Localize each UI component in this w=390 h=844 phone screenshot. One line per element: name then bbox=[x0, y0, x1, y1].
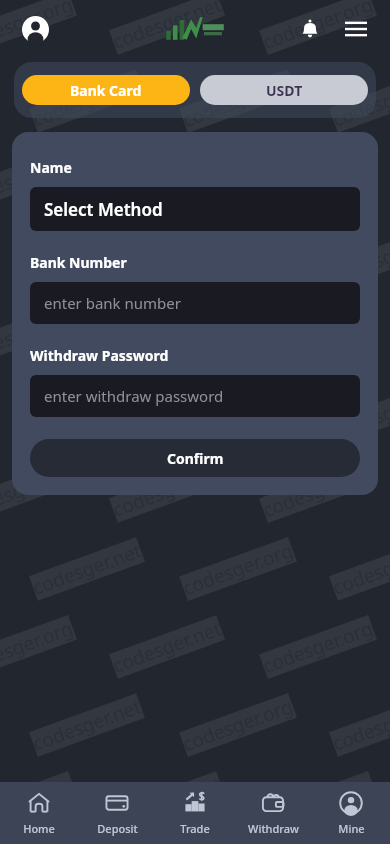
staticText: codesger.org bbox=[259, 615, 377, 679]
button[interactable]: Menu bbox=[336, 9, 376, 49]
staticText: codesger.org bbox=[0, 771, 77, 835]
button[interactable]: Deposit bbox=[78, 782, 156, 844]
staticText: codesger.org bbox=[259, 771, 377, 835]
staticText: Confirm bbox=[167, 449, 224, 468]
staticText: codesger.org bbox=[179, 381, 297, 445]
staticText: codesger.net bbox=[29, 381, 145, 445]
staticText: USDT bbox=[266, 81, 303, 100]
staticText: enter bank number bbox=[44, 293, 181, 313]
staticText: codesger.net bbox=[109, 147, 225, 211]
staticText: Deposit bbox=[97, 821, 138, 836]
staticText: codesger.org bbox=[179, 693, 297, 757]
button[interactable]: Profile bbox=[18, 12, 52, 46]
staticText: codesger.org bbox=[179, 69, 297, 133]
staticText: codesger.net bbox=[109, 303, 225, 367]
staticText: codesger.net bbox=[29, 693, 145, 757]
staticText: codesger.org bbox=[259, 0, 377, 55]
staticText: codesger.org bbox=[0, 0, 77, 55]
staticText: codesger.org bbox=[0, 147, 77, 211]
button[interactable]: Trade bbox=[156, 782, 234, 844]
staticText: codesger.org bbox=[259, 303, 377, 367]
button[interactable]: Confirm bbox=[30, 439, 360, 477]
staticText: codesger.net bbox=[109, 0, 225, 55]
staticText: codesger.org bbox=[179, 537, 297, 601]
staticText: codesger.net bbox=[109, 615, 225, 679]
staticText: codesger.org bbox=[179, 225, 297, 289]
staticText: Withdraw Password bbox=[30, 346, 169, 365]
staticText: codesger.net bbox=[29, 537, 145, 601]
staticText: codesger.org bbox=[259, 459, 377, 523]
staticText: codesger.org bbox=[0, 459, 77, 523]
staticText: codesger.org bbox=[0, 615, 77, 679]
staticText: codesger.net bbox=[329, 69, 390, 133]
button[interactable]: enter withdraw password bbox=[30, 375, 360, 417]
button[interactable]: enter bank number bbox=[30, 282, 360, 324]
button[interactable]: Notifications bbox=[290, 9, 330, 49]
staticText: codesger.net bbox=[329, 537, 390, 601]
staticText: codesger.org bbox=[259, 147, 377, 211]
staticText: Trade bbox=[180, 821, 210, 836]
button[interactable]: Withdraw bbox=[234, 782, 312, 844]
button[interactable]: Mine bbox=[312, 782, 390, 844]
staticText: codesger.org bbox=[0, 303, 77, 367]
staticText: Bank Number bbox=[30, 253, 127, 272]
staticText: codesger.net bbox=[109, 771, 225, 835]
staticText: codesger.net bbox=[109, 459, 225, 523]
staticText: codesger.net bbox=[329, 381, 390, 445]
staticText: Bank Card bbox=[70, 81, 142, 100]
staticText: codesger.net bbox=[329, 693, 390, 757]
staticText: Select Method bbox=[44, 198, 163, 221]
button[interactable]: Select Method bbox=[30, 187, 360, 231]
button[interactable]: USDT bbox=[200, 75, 368, 105]
staticText: enter withdraw password bbox=[44, 386, 224, 406]
button[interactable]: Bank Card bbox=[22, 75, 190, 105]
staticText: Withdraw bbox=[248, 821, 299, 836]
staticText: codesger.net bbox=[29, 225, 145, 289]
staticText: Mine bbox=[338, 821, 365, 836]
button[interactable]: Home bbox=[0, 782, 78, 844]
staticText: Name bbox=[30, 158, 72, 177]
staticText: codesger.net bbox=[29, 69, 145, 133]
staticText: codesger.net bbox=[329, 225, 390, 289]
staticText: Home bbox=[23, 821, 55, 836]
